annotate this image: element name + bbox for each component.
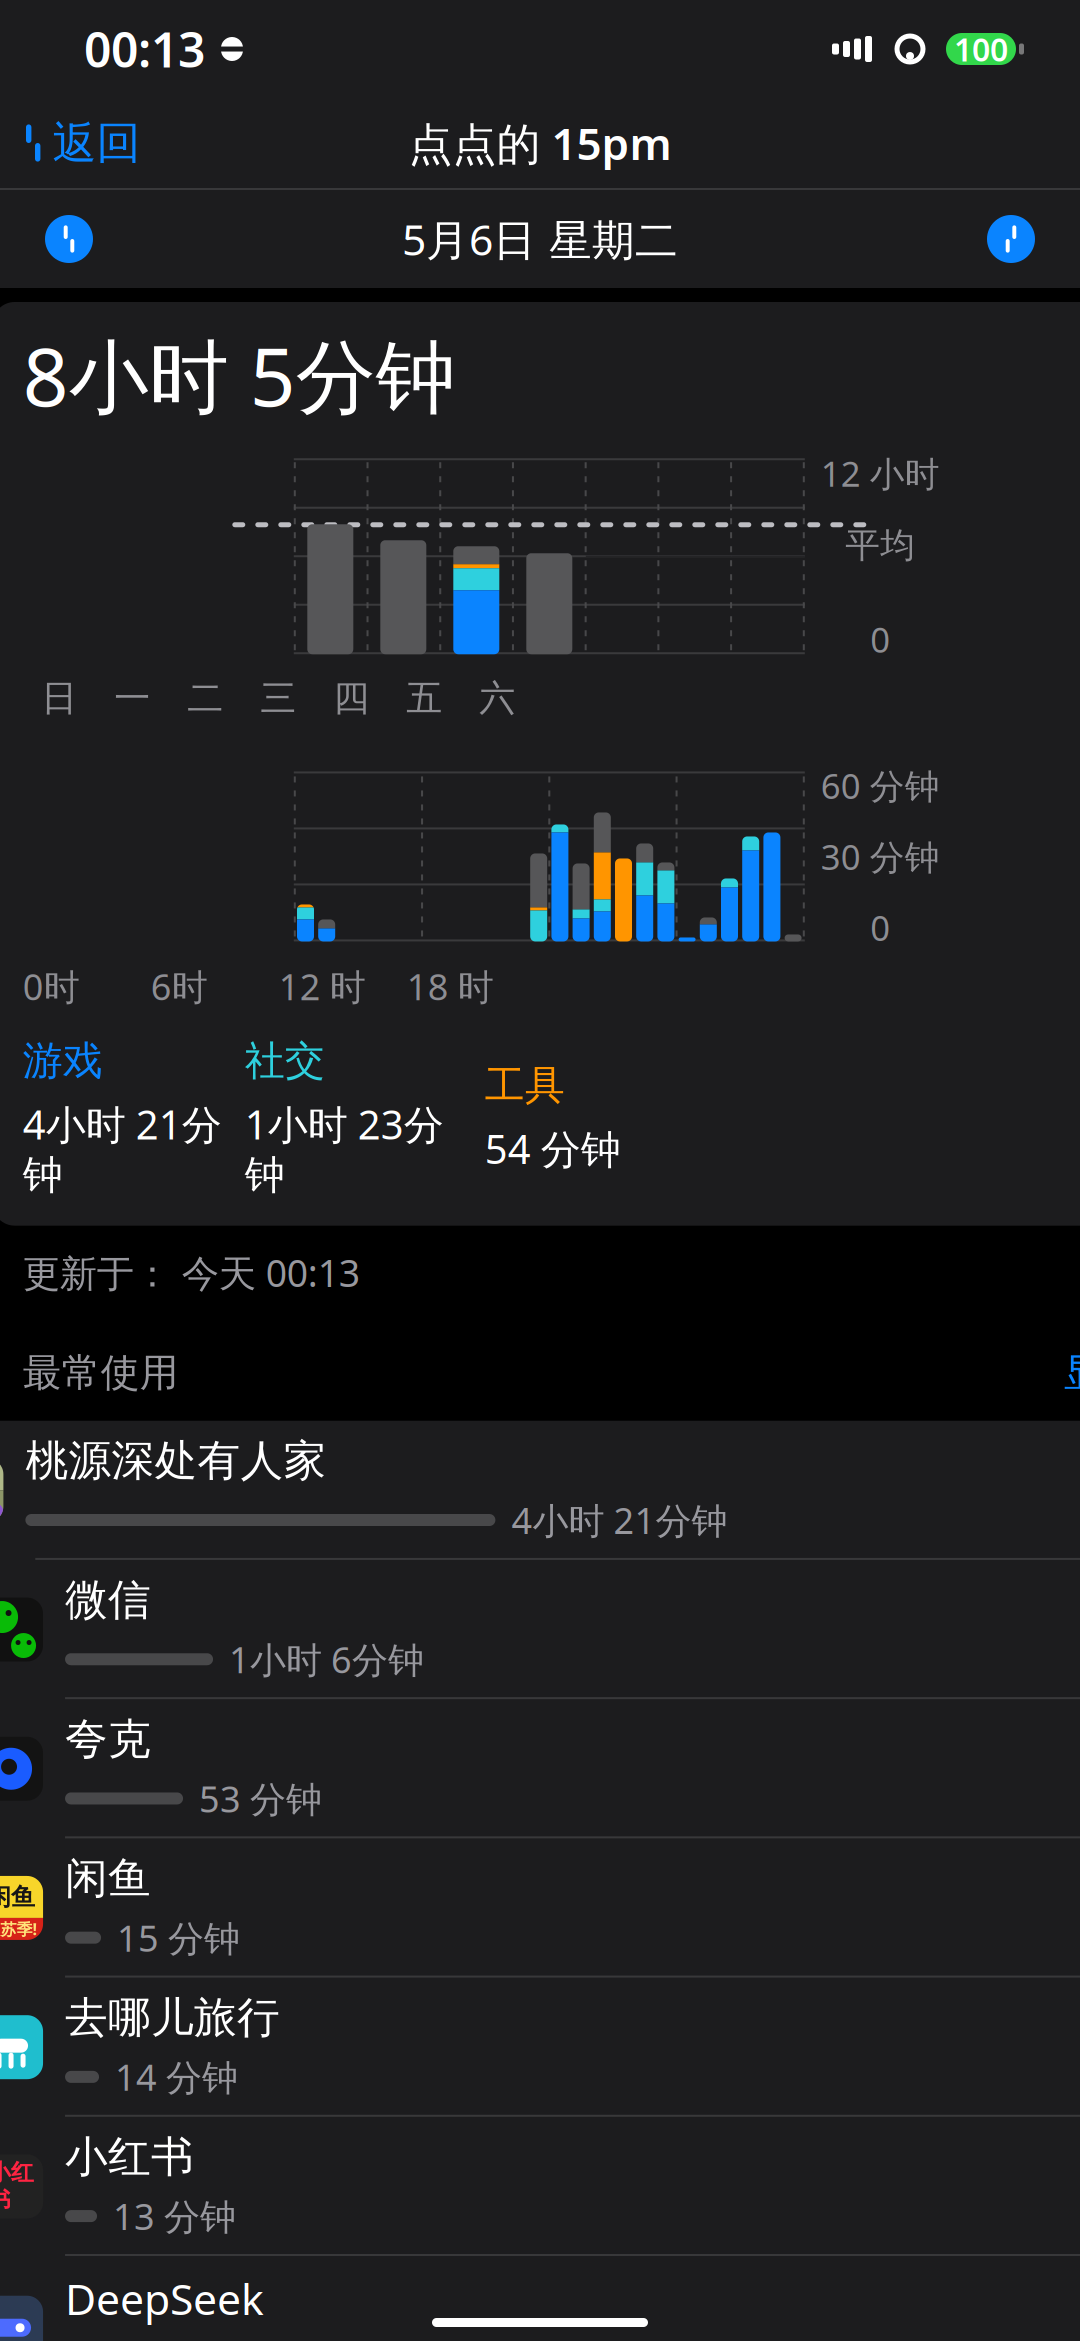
staticText: 点点的 15pm	[408, 114, 671, 172]
staticText: 15 分钟	[117, 1914, 240, 1962]
button[interactable]: 夸克	[0, 1699, 1080, 1838]
staticText: 100	[954, 28, 1008, 70]
button[interactable]: 闲鱼	[0, 1838, 1080, 1978]
staticText: 六	[479, 676, 515, 720]
staticText: 1小时 6分钟	[229, 1635, 424, 1683]
staticText: 0	[870, 616, 890, 662]
staticText: 微信	[65, 1574, 151, 1626]
staticText: 14 分钟	[115, 2053, 238, 2101]
staticText: 闲鱼	[65, 1852, 151, 1905]
button[interactable]: DeepSeek	[0, 2256, 1080, 2341]
staticText: DeepSeek	[65, 2270, 264, 2327]
button[interactable]: 桃源深处有人家	[0, 1421, 1080, 1560]
button[interactable]: 小红书	[0, 2117, 1080, 2256]
staticText: 返回	[52, 116, 140, 170]
staticText: 5月6日 星期二	[402, 211, 678, 267]
staticText: 夸克	[65, 1713, 151, 1765]
button[interactable]: 返回	[0, 104, 140, 182]
staticText: 30 分钟	[821, 833, 940, 879]
staticText: 平均	[845, 524, 915, 567]
staticText: 显示类别	[1064, 1349, 1080, 1397]
staticText: 13 分钟	[113, 2192, 236, 2240]
staticText: 0	[870, 904, 890, 950]
staticText: 富苏季!	[0, 1918, 37, 1939]
staticText: 54 分钟	[485, 1122, 621, 1175]
staticText: 8小时 5分钟	[23, 322, 456, 428]
staticText: 一	[114, 676, 150, 720]
staticText: 60 分钟	[821, 762, 940, 808]
button[interactable]: 显示类别	[1064, 1339, 1080, 1407]
staticText: 4小时 21分钟	[23, 1097, 222, 1200]
staticText: 更新于： 今天 00:13	[23, 1248, 360, 1297]
staticText: 1小时 23分钟	[245, 1097, 444, 1200]
button[interactable]: 去哪儿旅行	[0, 1978, 1080, 2117]
staticText: 社交	[245, 1036, 325, 1085]
staticText: 五	[406, 676, 442, 720]
staticText: 闲鱼	[0, 1882, 35, 1912]
staticText: 4小时 21分钟	[511, 1496, 727, 1544]
staticText: 6时	[151, 962, 208, 1010]
staticText: 小红书	[0, 2158, 34, 2214]
staticText: 12 小时	[821, 450, 940, 496]
staticText: 桃源深处有人家	[25, 1435, 326, 1487]
button[interactable]: 微信	[0, 1560, 1080, 1699]
button[interactable]: 前一天	[34, 204, 104, 274]
staticText: 游戏	[23, 1036, 103, 1085]
button[interactable]: 后一天	[976, 204, 1046, 274]
staticText: 去哪儿旅行	[65, 1992, 280, 2044]
staticText: 00:13	[84, 17, 205, 81]
staticText: 三	[260, 676, 296, 720]
staticText: 12 时	[279, 962, 366, 1010]
staticText: 二	[187, 676, 223, 720]
staticText: 日	[41, 676, 77, 720]
staticText: 最常使用	[23, 1349, 179, 1397]
staticText: 工具	[485, 1061, 565, 1110]
staticText: 18 时	[407, 962, 494, 1010]
staticText: 53 分钟	[199, 1774, 322, 1822]
staticText: 0时	[23, 962, 80, 1010]
staticText: 四	[333, 676, 369, 720]
staticText: 小红书	[65, 2131, 194, 2183]
